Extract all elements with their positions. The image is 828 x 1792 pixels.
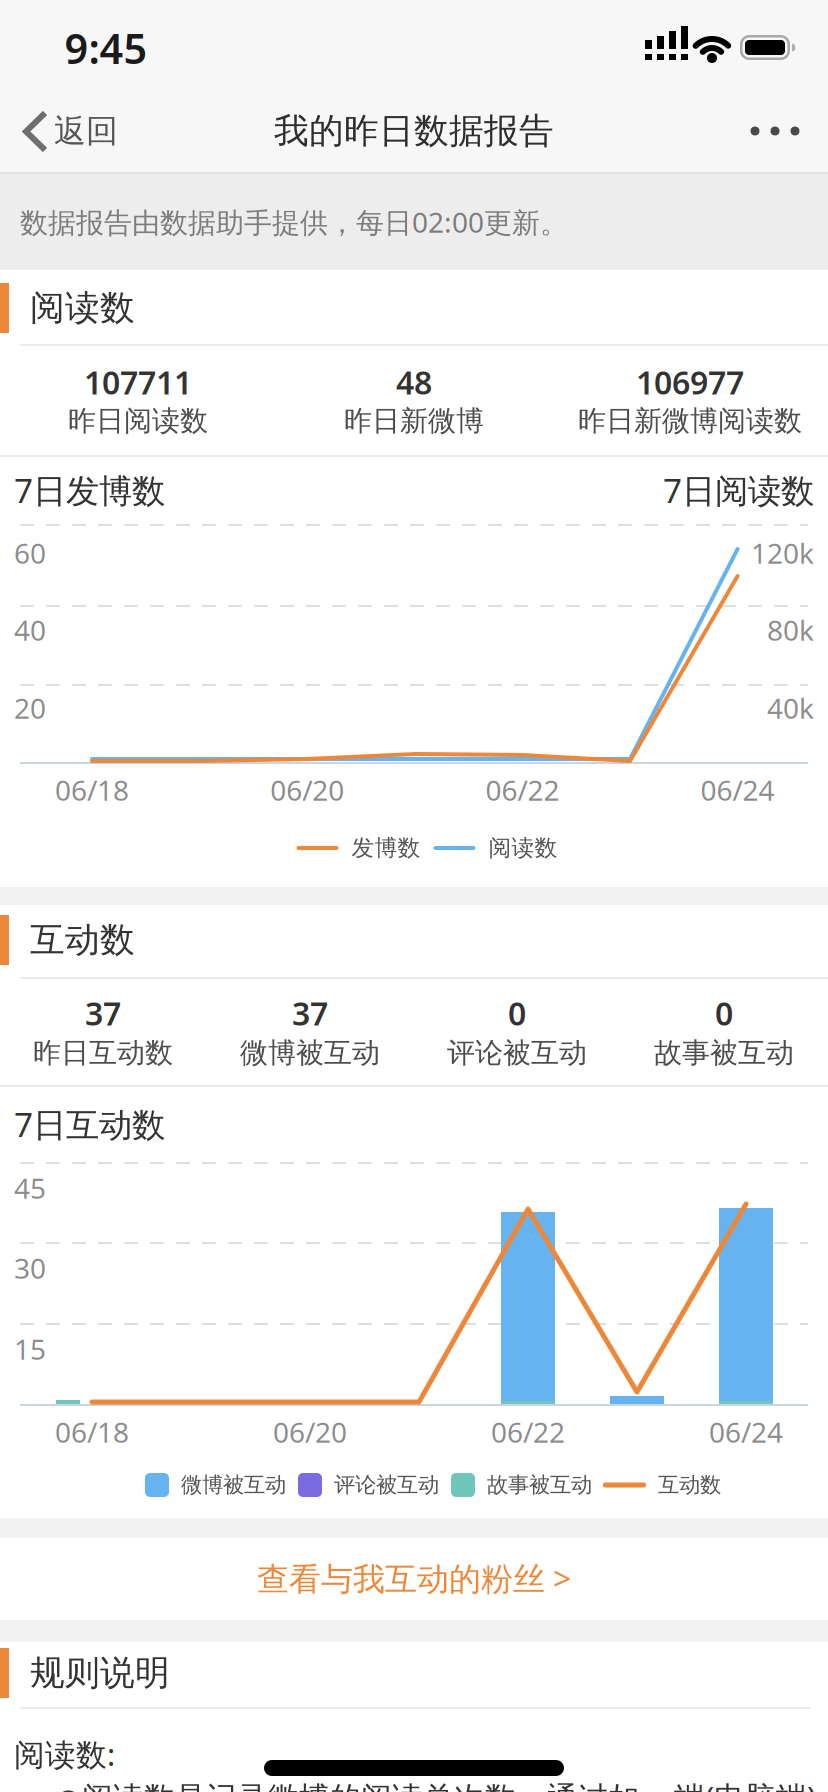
staticText: 06/22 [491,1413,565,1451]
staticText: 昨日新微博阅读数 [578,404,802,438]
staticText: 06/18 [55,1413,129,1451]
staticText: 60 [14,534,46,572]
staticText: 阅读数 [30,287,135,329]
staticText: 06/20 [270,771,344,809]
staticText: 30 [14,1249,46,1287]
staticText: 故事被互动 [487,1472,592,1498]
staticText: 37 [85,992,121,1034]
staticText: 微博被互动 [240,1036,380,1070]
staticText: 40k [767,689,814,727]
staticText: 微博被互动 [181,1472,286,1498]
staticText: 规则说明 [30,1652,170,1694]
staticText: 80k [767,611,814,649]
staticText: 40 [14,611,46,649]
staticText: 阅读数 [488,834,557,862]
staticText: 发博数 [351,834,420,862]
staticText: 互动数 [658,1472,721,1498]
staticText: 阅读数: [14,1734,115,1774]
staticText: 昨日互动数 [33,1036,173,1070]
button[interactable]: 返回 [0,88,160,176]
staticText: 06/18 [55,771,129,809]
staticText: 15 [14,1330,46,1368]
staticText: 评论被互动 [334,1472,439,1498]
staticText: 06/20 [273,1413,347,1451]
staticText: 06/24 [709,1413,783,1451]
staticText: 120k [751,534,814,572]
staticText: 昨日新微博 [344,404,484,438]
staticText: 返回 [54,111,118,151]
button[interactable]: 查看与我互动的粉丝 > [134,1538,694,1618]
staticText: 故事被互动 [654,1036,794,1070]
staticText: 我的昨日数据报告 [274,110,554,152]
staticText: 06/22 [485,771,559,809]
staticText: 06/24 [701,771,775,809]
button[interactable]: 更多 [735,101,815,161]
staticText: 20 [14,689,46,727]
staticText: 48 [396,361,432,403]
staticText: 互动数 [30,919,135,961]
staticText: 9:45 [64,21,147,75]
staticText: 7日互动数 [14,1102,165,1146]
staticText: 0 [715,992,733,1034]
staticText: 昨日阅读数 [68,404,208,438]
staticText: 37 [292,992,328,1034]
staticText: 45 [14,1169,46,1207]
staticText: 107711 [84,361,192,403]
staticText: 查看与我互动的粉丝 > [257,1557,571,1599]
staticText: 7日阅读数 [663,468,814,512]
staticText: 7日发博数 [14,468,165,512]
staticText: 106977 [636,361,744,403]
staticText: 数据报告由数据助手提供，每日02:00更新。 [20,203,568,241]
staticText: 评论被互动 [447,1036,587,1070]
staticText: ●阅读数是记录微博的阅读总次数，通过如pc端(电脑端)、手机 [55,1777,828,1792]
staticText: 0 [508,992,526,1034]
